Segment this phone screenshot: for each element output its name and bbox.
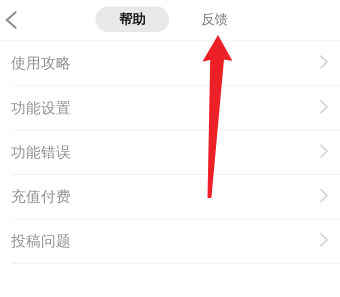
- button[interactable]: 充值付费: [0, 175, 340, 219]
- button[interactable]: 返回: [0, 0, 23, 40]
- button[interactable]: 功能设置: [0, 86, 340, 131]
- button[interactable]: 使用攻略: [0, 41, 340, 86]
- staticText: 帮助: [119, 11, 145, 27]
- staticText: 投稿问题: [11, 232, 71, 250]
- button[interactable]: 投稿问题: [0, 219, 340, 264]
- staticText: 反馈: [201, 11, 227, 27]
- staticText: 使用攻略: [11, 54, 71, 72]
- button[interactable]: 反馈: [169, 6, 260, 32]
- staticText: 充值付费: [11, 188, 71, 206]
- staticText: 功能错误: [11, 143, 71, 161]
- button[interactable]: 功能错误: [0, 131, 340, 175]
- button[interactable]: 帮助: [95, 6, 169, 32]
- staticText: 功能设置: [11, 99, 71, 117]
